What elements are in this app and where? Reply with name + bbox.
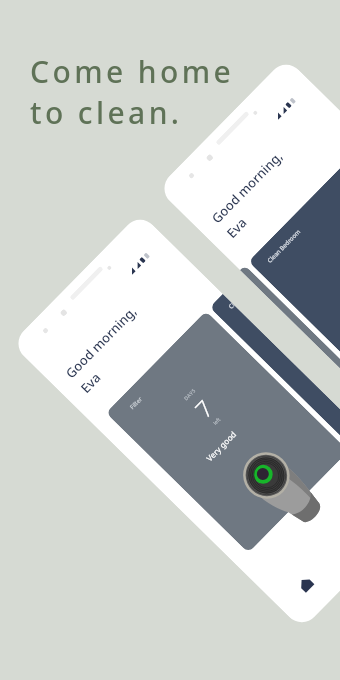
staticText: 7 [188,392,219,424]
staticText: Eva [222,213,251,242]
button[interactable]: Filter [106,311,340,553]
staticText: Very good [204,428,239,463]
staticText: Good morning, [61,302,140,382]
staticText: Come home [30,51,235,92]
button[interactable]: Clean Bedroom [209,294,340,447]
staticText: Clean Bedroom [266,228,302,265]
button[interactable]: Filter [240,265,340,410]
staticText: Good morning, [207,147,286,227]
staticText: left [212,416,222,427]
button[interactable]: Clean Bedroom [248,159,340,402]
staticText: Eva [76,368,105,397]
staticText: DAYS [183,387,198,402]
staticText: to clean. [30,92,183,133]
staticText: Clean Bedroom [227,301,236,311]
button[interactable]: Home [293,572,319,597]
staticText: Filter [128,395,144,411]
